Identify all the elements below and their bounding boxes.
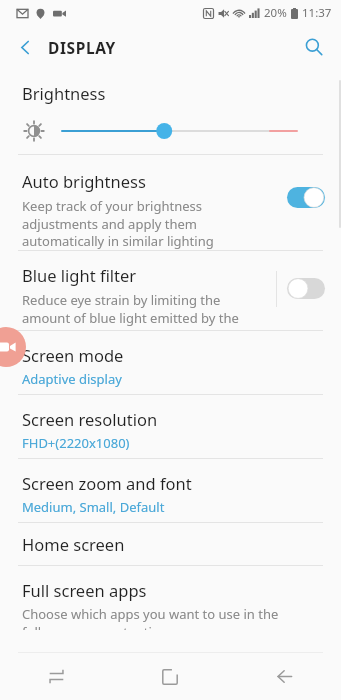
button[interactable]: Home — [113, 653, 227, 700]
button[interactable]: Recents — [0, 653, 113, 700]
staticText: Screen resolution — [22, 408, 158, 430]
button[interactable]: Back — [227, 653, 341, 700]
staticText: FHD+(2220x1080) — [22, 434, 130, 452]
button[interactable]: Screen recorder — [0, 327, 26, 367]
button[interactable] — [287, 187, 325, 208]
staticText: Adaptive display — [22, 370, 122, 388]
staticText: Reduce eye strain by limiting the amount… — [22, 291, 264, 330]
staticText: Home screen — [22, 533, 125, 555]
staticText: Screen zoom and font — [22, 472, 192, 494]
staticText: 20% — [264, 5, 287, 21]
staticText: Full screen apps — [22, 579, 147, 601]
staticText: 11:37 — [302, 5, 332, 21]
button[interactable]: Back — [8, 30, 42, 64]
staticText: DISPLAY — [48, 37, 116, 58]
staticText: Choose which apps you want to use in the… — [22, 605, 293, 630]
staticText: Keep track of your brightness adjustment… — [22, 197, 275, 250]
button[interactable]: Screen zoom and font — [0, 459, 341, 522]
button[interactable]: Blue light filter — [0, 251, 341, 330]
button[interactable]: Screen mode — [0, 331, 341, 394]
staticText: Brightness — [22, 82, 106, 104]
button[interactable]: Home screen — [0, 523, 341, 565]
button[interactable] — [287, 278, 325, 299]
staticText: Blue light filter — [22, 264, 137, 286]
button[interactable]: Brightness — [0, 68, 341, 154]
button[interactable]: Screen resolution — [0, 395, 341, 458]
staticText: Medium, Small, Default — [22, 498, 165, 516]
button[interactable]: Auto brightness — [0, 155, 341, 250]
staticText: Auto brightness — [22, 170, 146, 192]
staticText: Screen mode — [22, 344, 124, 366]
button[interactable]: Full screen apps — [0, 566, 341, 630]
button[interactable]: Search — [295, 28, 333, 66]
